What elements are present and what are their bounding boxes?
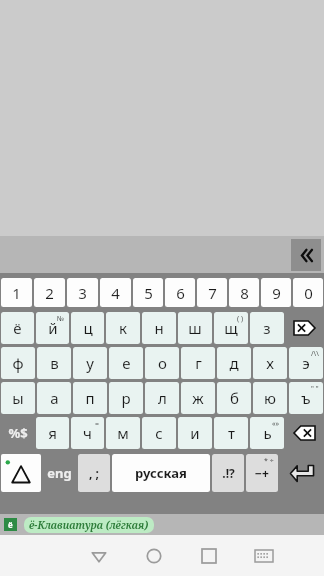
staticText: у bbox=[86, 353, 94, 373]
button[interactable]: в bbox=[37, 347, 71, 379]
button[interactable]: Keyboard settings bbox=[1, 454, 41, 492]
button[interactable]: 8 bbox=[229, 278, 259, 307]
staticText: 0 bbox=[304, 283, 313, 303]
button[interactable]: Hide keyboard bbox=[291, 239, 321, 271]
staticText: б bbox=[230, 388, 239, 408]
staticText: и bbox=[190, 423, 200, 443]
button[interactable]: 2 bbox=[34, 278, 65, 307]
button[interactable]: Backspace bbox=[285, 416, 324, 450]
staticText: № bbox=[57, 314, 65, 324]
button[interactable]: х bbox=[253, 347, 287, 379]
staticText: 7 bbox=[208, 283, 217, 303]
button[interactable]: ц bbox=[71, 312, 104, 344]
button[interactable]: ч bbox=[71, 417, 104, 449]
button[interactable]: 4 bbox=[100, 278, 131, 307]
staticText: 5 bbox=[144, 283, 153, 303]
button[interactable]: г bbox=[181, 347, 215, 379]
staticText: х bbox=[266, 353, 274, 373]
staticText: г bbox=[195, 353, 202, 373]
staticText: 3 bbox=[78, 283, 87, 303]
button[interactable]: с bbox=[142, 417, 176, 449]
button[interactable]: н bbox=[142, 312, 176, 344]
button[interactable]: й bbox=[36, 312, 69, 344]
button[interactable]: ь bbox=[250, 417, 284, 449]
button[interactable]: eng bbox=[42, 453, 77, 493]
staticText: 2 bbox=[45, 283, 54, 303]
button[interactable]: я bbox=[36, 417, 69, 449]
staticText: 8 bbox=[240, 283, 249, 303]
button[interactable]: ъ bbox=[289, 382, 323, 414]
staticText: 6 bbox=[176, 283, 185, 303]
staticText: э bbox=[302, 353, 310, 373]
button[interactable]: .!? bbox=[212, 454, 244, 492]
staticText: й bbox=[48, 318, 58, 338]
staticText: ъ bbox=[301, 388, 311, 408]
button[interactable]: ю bbox=[253, 382, 287, 414]
button[interactable]: , ; bbox=[78, 454, 110, 492]
button[interactable]: ш bbox=[178, 312, 212, 344]
staticText: м bbox=[117, 423, 129, 443]
button[interactable]: ё bbox=[1, 312, 34, 344]
staticText: .!? bbox=[222, 465, 235, 481]
staticText: ё-Клавиатура (лёгкая) bbox=[29, 518, 149, 532]
button[interactable]: п bbox=[73, 382, 107, 414]
staticText: * ÷ bbox=[264, 456, 274, 466]
button[interactable]: л bbox=[145, 382, 179, 414]
staticText: 4 bbox=[111, 283, 120, 303]
staticText: п bbox=[85, 388, 95, 408]
button[interactable]: 9 bbox=[261, 278, 291, 307]
button[interactable]: э bbox=[289, 347, 323, 379]
button[interactable]: Back bbox=[71, 535, 126, 576]
staticText: д bbox=[229, 353, 239, 373]
button[interactable]: и bbox=[178, 417, 212, 449]
staticText: т bbox=[228, 423, 235, 443]
button[interactable]: т bbox=[214, 417, 248, 449]
staticText: в bbox=[50, 353, 59, 373]
button[interactable]: Enter bbox=[279, 453, 324, 493]
button[interactable]: 1 bbox=[1, 278, 32, 307]
button[interactable]: а bbox=[37, 382, 71, 414]
button[interactable]: Delete bbox=[285, 311, 324, 345]
staticText: " " bbox=[311, 384, 319, 394]
button[interactable]: Recents bbox=[181, 535, 236, 576]
button[interactable]: 6 bbox=[165, 278, 195, 307]
staticText: ё bbox=[8, 519, 13, 530]
staticText: е bbox=[122, 353, 131, 373]
button[interactable]: з bbox=[250, 312, 284, 344]
button[interactable]: 3 bbox=[67, 278, 98, 307]
button[interactable]: русская bbox=[112, 454, 210, 492]
staticText: %$ bbox=[8, 424, 28, 442]
button[interactable]: к bbox=[106, 312, 140, 344]
button[interactable]: у bbox=[73, 347, 107, 379]
button[interactable]: Switch keyboard bbox=[236, 535, 291, 576]
button[interactable]: о bbox=[145, 347, 179, 379]
button[interactable]: 5 bbox=[133, 278, 163, 307]
staticText: /\\ bbox=[311, 349, 319, 359]
button[interactable]: ё bbox=[0, 514, 324, 535]
staticText: ё bbox=[13, 318, 22, 338]
staticText: = bbox=[95, 419, 100, 429]
button[interactable]: м bbox=[106, 417, 140, 449]
button[interactable]: ж bbox=[181, 382, 215, 414]
button[interactable]: 7 bbox=[197, 278, 227, 307]
staticText: ц bbox=[83, 318, 93, 338]
button[interactable]: ф bbox=[1, 347, 35, 379]
staticText: н bbox=[154, 318, 164, 338]
button[interactable]: щ bbox=[214, 312, 248, 344]
button[interactable]: 0 bbox=[293, 278, 323, 307]
button[interactable]: %$ bbox=[0, 416, 35, 450]
staticText: к bbox=[119, 318, 127, 338]
staticText: ж bbox=[192, 388, 204, 408]
button[interactable]: Home bbox=[126, 535, 181, 576]
staticText: русская bbox=[135, 464, 187, 482]
button[interactable]: д bbox=[217, 347, 251, 379]
staticText: з bbox=[263, 318, 271, 338]
button[interactable]: −+ bbox=[246, 454, 278, 492]
button[interactable]: е bbox=[109, 347, 143, 379]
staticText: ф bbox=[12, 353, 24, 373]
button[interactable]: р bbox=[109, 382, 143, 414]
button[interactable]: ы bbox=[1, 382, 35, 414]
staticText: 9 bbox=[272, 283, 281, 303]
button[interactable]: б bbox=[217, 382, 251, 414]
staticText: «» bbox=[272, 419, 280, 429]
